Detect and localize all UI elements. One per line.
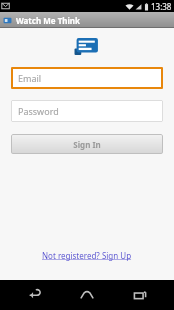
button[interactable]: Email xyxy=(11,67,163,89)
button[interactable]: Password xyxy=(11,100,163,122)
button[interactable]: Home xyxy=(69,280,105,310)
button[interactable]: Sign In xyxy=(11,134,163,154)
staticText: Watch Me Think xyxy=(16,15,81,26)
button[interactable]: Not registered? Sign Up xyxy=(36,247,138,264)
staticText: Sign In xyxy=(73,139,101,150)
staticText: Password xyxy=(18,105,59,117)
button[interactable]: Back xyxy=(17,280,53,310)
button[interactable]: Recent apps xyxy=(122,280,158,310)
staticText: 13:38 xyxy=(151,1,172,12)
staticText: Email xyxy=(18,72,42,84)
staticText: Not registered? Sign Up xyxy=(42,250,132,261)
